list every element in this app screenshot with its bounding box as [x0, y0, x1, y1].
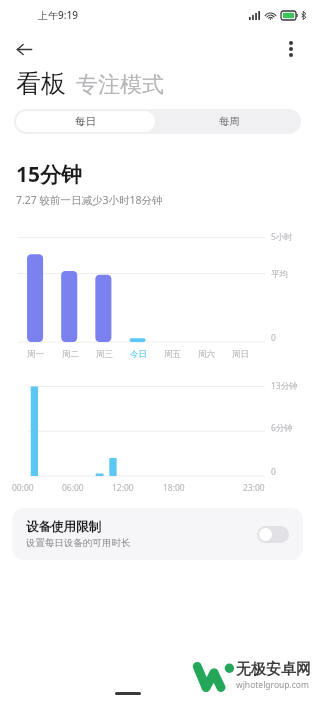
button[interactable]: Toggle device usage limit: [257, 526, 289, 543]
staticText: 15分钟: [16, 160, 83, 189]
staticText: 周五: [164, 349, 181, 360]
button[interactable]: 每周: [157, 109, 301, 134]
staticText: 7.27 较前一日减少3小时18分钟: [16, 193, 163, 207]
button[interactable]: 设备使用限制: [12, 508, 303, 560]
staticText: 0: [271, 466, 276, 478]
staticText: 每日: [75, 115, 96, 128]
staticText: 0: [271, 332, 276, 344]
staticText: 06:00: [62, 482, 84, 494]
staticText: 无极安卓网: [236, 660, 311, 679]
staticText: wjhotelgroup.com: [236, 679, 309, 691]
staticText: 12:00: [112, 482, 134, 494]
staticText: 每周: [219, 115, 240, 128]
staticText: 18:00: [163, 482, 185, 494]
staticText: 周一: [27, 349, 44, 360]
staticText: 5小时: [271, 231, 293, 243]
button[interactable]: Back: [8, 33, 40, 65]
staticText: 周六: [198, 349, 215, 360]
staticText: 00:00: [12, 482, 34, 494]
staticText: 上午9:19: [38, 8, 78, 22]
button[interactable]: 专注模式: [76, 71, 164, 99]
staticText: 周三: [96, 349, 113, 360]
staticText: 13分钟: [271, 380, 298, 392]
staticText: 周日: [232, 349, 249, 360]
staticText: 6分钟: [271, 422, 293, 434]
staticText: 平均: [271, 269, 288, 280]
button[interactable]: 看板: [16, 68, 66, 99]
staticText: 设置每日设备的可用时长: [26, 537, 131, 549]
staticText: 今日: [130, 349, 147, 360]
staticText: 23:00: [243, 482, 265, 494]
staticText: 设备使用限制: [26, 519, 101, 535]
staticText: 周二: [62, 349, 79, 360]
button[interactable]: 每日: [16, 111, 155, 132]
button[interactable]: More options: [276, 34, 306, 64]
